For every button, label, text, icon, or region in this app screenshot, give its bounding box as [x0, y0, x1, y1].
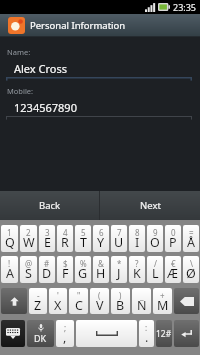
staticText: 6 — [99, 227, 104, 238]
button[interactable]: ) — [111, 288, 130, 314]
staticText: . — [145, 329, 149, 346]
staticText: W — [23, 234, 35, 251]
staticText: F — [62, 265, 69, 282]
staticText: 23:35 — [173, 1, 197, 13]
button[interactable]: + — [153, 288, 172, 314]
button[interactable]: € — [165, 256, 181, 283]
staticText: O — [150, 234, 160, 251]
staticText: H — [96, 265, 106, 282]
button[interactable]: = — [183, 225, 199, 252]
button[interactable]: Alex Cross — [6, 61, 192, 81]
staticText: 9 — [153, 227, 158, 238]
staticText: 0 — [171, 227, 176, 238]
staticText: 3 — [45, 227, 50, 238]
staticText: L — [152, 265, 159, 282]
button[interactable]: \ — [183, 256, 199, 283]
button[interactable]: Shift — [1, 288, 27, 314]
staticText: U — [114, 234, 124, 251]
staticText: C — [75, 297, 83, 314]
button[interactable]: Voice input — [27, 320, 54, 347]
button[interactable]: 1 — [1, 225, 18, 252]
button[interactable]: App icon — [8, 17, 25, 34]
staticText: ! — [8, 258, 11, 269]
button[interactable]: 2 — [20, 225, 37, 252]
staticText: A — [6, 265, 14, 282]
staticText: V — [96, 297, 104, 314]
staticText: $ — [63, 258, 68, 269]
staticText: 7 — [117, 227, 122, 238]
staticText: Next — [140, 199, 161, 212]
staticText: 12# — [156, 328, 172, 340]
staticText: I — [135, 234, 140, 251]
button[interactable]: _ — [132, 288, 151, 314]
button[interactable]: " — [69, 288, 88, 314]
button[interactable]: 0 — [165, 225, 181, 252]
staticText: , — [63, 329, 67, 346]
button[interactable]: 6 — [93, 225, 109, 252]
staticText: * — [117, 258, 122, 269]
button[interactable]: 9 — [147, 225, 163, 252]
staticText: Æ — [167, 265, 179, 282]
button[interactable]: 5 — [75, 225, 91, 252]
button[interactable]: Enter — [174, 320, 199, 347]
staticText: & — [98, 258, 104, 269]
staticText: ? — [135, 258, 139, 269]
staticText: € — [171, 258, 176, 269]
staticText: # — [44, 258, 50, 269]
staticText: N — [137, 297, 147, 314]
button[interactable]: ( — [90, 288, 109, 314]
staticText: _ — [140, 290, 144, 301]
button[interactable]: - — [29, 288, 47, 314]
staticText: D — [42, 265, 52, 282]
staticText: Y — [97, 234, 105, 251]
button[interactable]: Symbols — [156, 320, 172, 347]
staticText: P — [169, 234, 177, 251]
staticText: Q — [5, 234, 15, 251]
staticText: - — [37, 290, 40, 301]
button[interactable]: Next — [100, 191, 200, 220]
button[interactable]: % — [75, 256, 91, 283]
staticText: DK — [34, 332, 47, 344]
staticText: B — [116, 297, 125, 314]
button[interactable]: 7 — [111, 225, 127, 252]
button[interactable]: Switch keyboard — [1, 320, 25, 347]
staticText: 4 — [63, 227, 68, 238]
staticText: @ — [25, 258, 33, 269]
button[interactable]: Space — [76, 320, 137, 347]
button[interactable]: ! — [1, 256, 18, 283]
staticText: T — [80, 234, 87, 251]
button[interactable]: 4 — [57, 225, 73, 252]
button[interactable]: # — [39, 256, 55, 283]
button[interactable]: 1234567890 — [6, 100, 192, 120]
staticText: 1 — [7, 227, 12, 238]
staticText: K — [133, 265, 141, 282]
staticText: S — [25, 265, 32, 282]
staticText: : — [145, 322, 148, 333]
staticText: Name: — [7, 47, 31, 57]
staticText: Personal Information — [30, 19, 126, 32]
button[interactable]: Backspace — [174, 288, 199, 314]
staticText: ; — [64, 322, 67, 333]
button[interactable]: / — [147, 256, 163, 283]
button[interactable]: ' — [49, 288, 67, 314]
staticText: ) — [119, 290, 122, 301]
button[interactable]: ? — [129, 256, 145, 283]
button[interactable]: : — [139, 320, 154, 347]
button[interactable]: * — [111, 256, 127, 283]
staticText: Back — [39, 199, 61, 212]
staticText: Mobile: — [7, 86, 34, 96]
button[interactable]: & — [93, 256, 109, 283]
staticText: 2 — [26, 227, 31, 238]
staticText: ' — [57, 290, 59, 301]
staticText: X — [54, 297, 62, 314]
staticText: Ø — [186, 265, 196, 282]
button[interactable]: ; — [56, 320, 74, 347]
button[interactable]: 3 — [39, 225, 55, 252]
staticText: = — [189, 227, 194, 238]
button[interactable]: Back — [0, 191, 99, 220]
staticText: M — [157, 297, 169, 314]
button[interactable]: @ — [20, 256, 37, 283]
staticText: R — [61, 234, 69, 251]
button[interactable]: $ — [57, 256, 73, 283]
button[interactable]: 8 — [129, 225, 145, 252]
